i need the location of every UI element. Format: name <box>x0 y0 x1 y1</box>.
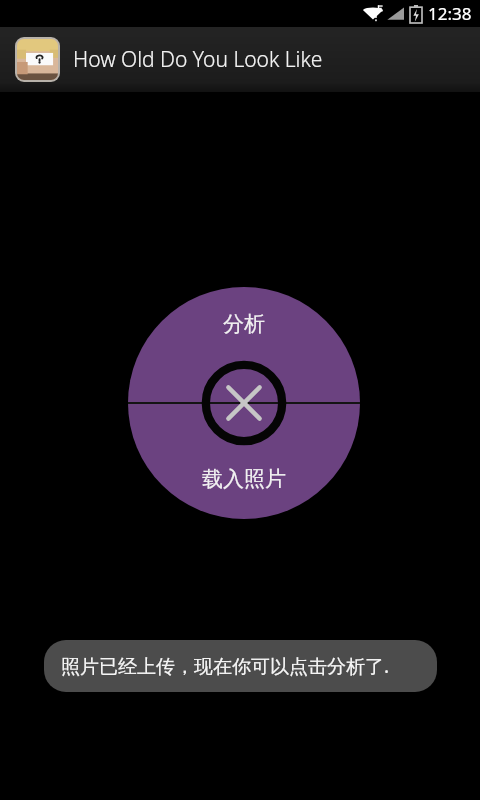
button[interactable]: 照片已经上传，现在你可以点击分析了. <box>44 640 437 692</box>
staticText: 照片已经上传，现在你可以点击分析了. <box>61 653 390 679</box>
staticText: How Old Do You Look Like <box>73 45 323 74</box>
button[interactable] <box>128 403 360 519</box>
staticText: 载入照片 <box>202 466 286 492</box>
staticText: 分析 <box>223 311 265 337</box>
staticText: 12:38 <box>428 2 472 25</box>
button[interactable]: How Old Do You Look Like <box>0 27 480 92</box>
button[interactable]: Close menu <box>202 361 286 445</box>
button[interactable] <box>128 287 360 403</box>
